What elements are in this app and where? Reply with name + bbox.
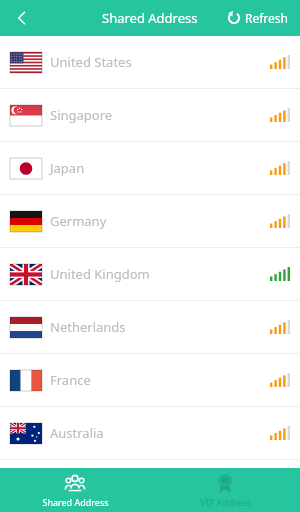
staticText: Refresh (245, 10, 289, 26)
staticText: Germany (50, 212, 107, 230)
staticText: Shared Address (42, 496, 109, 508)
button[interactable]: United Kingdom (0, 248, 300, 301)
button[interactable]: France (0, 354, 300, 407)
staticText: France (50, 371, 91, 389)
staticText: United States (50, 53, 132, 71)
staticText: Singapore (50, 106, 113, 124)
button[interactable]: VIP Address (150, 468, 300, 512)
button[interactable]: Netherlands (0, 301, 300, 354)
button[interactable]: United States (0, 36, 300, 89)
staticText: United Kingdom (50, 265, 150, 283)
button[interactable]: Refresh (224, 0, 292, 36)
staticText: Shared Address (102, 9, 198, 27)
button[interactable]: Singapore (0, 89, 300, 142)
button[interactable]: Germany (0, 195, 300, 248)
button[interactable]: Japan (0, 142, 300, 195)
staticText: Netherlands (50, 318, 126, 336)
button[interactable]: Back (0, 0, 44, 36)
button[interactable]: Australia (0, 407, 300, 460)
staticText: VIP Address (200, 496, 251, 508)
staticText: Japan (50, 159, 85, 177)
staticText: Australia (50, 424, 104, 442)
button[interactable]: Shared Address (0, 468, 150, 512)
